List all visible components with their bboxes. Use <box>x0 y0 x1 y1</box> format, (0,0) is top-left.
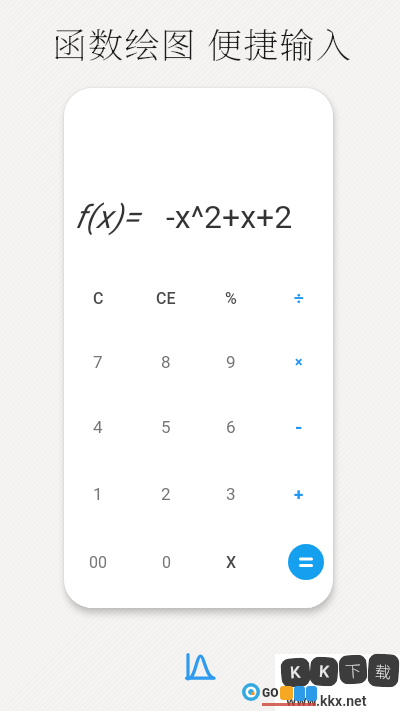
button[interactable]: X <box>200 539 262 585</box>
staticText: 下 <box>344 657 363 681</box>
staticText: -x^2+x+2 <box>166 198 293 236</box>
button[interactable]: % <box>200 275 262 321</box>
staticText: CE <box>156 289 176 308</box>
button[interactable]: C <box>67 275 129 321</box>
staticText: 4 <box>93 417 103 437</box>
button[interactable] <box>181 648 219 686</box>
staticText: 7 <box>93 352 103 372</box>
staticText: X <box>226 553 237 572</box>
staticText: www.kkx.net <box>286 693 367 709</box>
button[interactable]: CE <box>135 275 197 321</box>
staticText: GO <box>262 686 279 700</box>
button[interactable]: + <box>268 471 330 517</box>
staticText: 1 <box>93 484 103 504</box>
staticText: ÷ <box>294 288 304 308</box>
staticText: C <box>93 289 104 308</box>
staticText: % <box>225 289 237 308</box>
staticText: 6 <box>226 417 236 437</box>
button[interactable]: 5 <box>135 404 197 450</box>
staticText: 2 <box>161 484 171 504</box>
button[interactable]: ÷ <box>268 275 330 321</box>
staticText: + <box>294 484 304 504</box>
button[interactable]: 4 <box>67 404 129 450</box>
staticText: 8 <box>161 352 171 372</box>
staticText: 函数绘图 便捷输入 <box>52 18 352 66</box>
button[interactable]: 0 <box>135 539 197 585</box>
staticText: f(x)= <box>75 198 140 236</box>
button[interactable]: 9 <box>200 339 262 385</box>
staticText: 3 <box>226 484 236 504</box>
button[interactable]: 8 <box>135 339 197 385</box>
staticText: 9 <box>226 352 236 372</box>
button[interactable]: 7 <box>67 339 129 385</box>
button[interactable]: 2 <box>135 471 197 517</box>
button[interactable]: - <box>268 404 330 450</box>
staticText: 00 <box>89 553 107 572</box>
button[interactable]: × <box>268 339 330 385</box>
button[interactable]: 3 <box>200 471 262 517</box>
button[interactable]: 6 <box>200 404 262 450</box>
button[interactable]: 1 <box>67 471 129 517</box>
staticText: 0 <box>162 553 171 572</box>
button[interactable] <box>288 544 324 580</box>
staticText: 5 <box>161 417 171 437</box>
staticText: × <box>295 354 303 370</box>
button[interactable]: 00 <box>67 539 129 585</box>
staticText: K <box>318 662 330 681</box>
staticText: - <box>295 416 303 438</box>
staticText: 载 <box>374 659 393 682</box>
staticText: K <box>289 663 302 682</box>
